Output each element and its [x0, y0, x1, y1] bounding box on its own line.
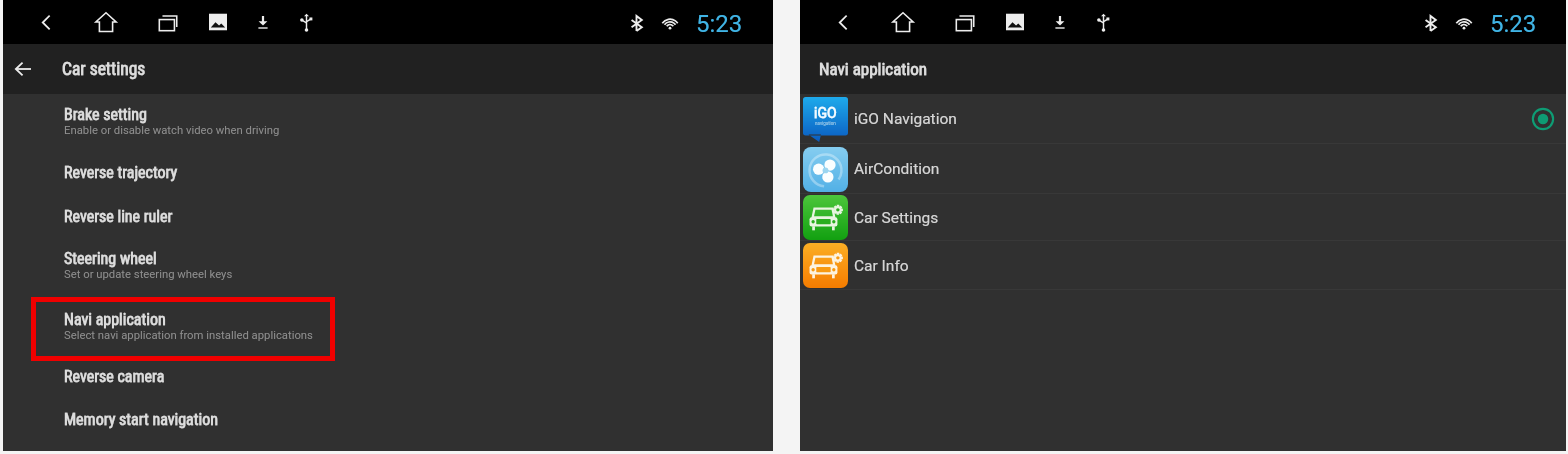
staticText: Reverse camera — [64, 367, 165, 386]
staticText: iGO — [814, 105, 837, 121]
button[interactable]: USB — [296, 12, 317, 33]
staticText: Set or update steering wheel keys — [64, 268, 233, 281]
other: Wi-Fi — [660, 13, 680, 33]
button[interactable]: Home — [95, 11, 117, 33]
staticText: AirCondition — [854, 160, 940, 178]
staticText: Memory start navigation — [64, 410, 218, 429]
staticText: Brake setting — [64, 105, 147, 124]
button[interactable]: Car Info — [800, 241, 1566, 290]
button[interactable]: Car Settings — [800, 194, 1566, 241]
staticText: Reverse trajectory — [64, 163, 178, 182]
button[interactable]: Recents — [954, 12, 975, 33]
button[interactable]: Reverse line ruler — [3, 207, 773, 227]
staticText: Reverse line ruler — [64, 207, 173, 226]
button[interactable]: Download — [253, 12, 273, 32]
button[interactable]: Back — [36, 12, 57, 33]
button[interactable]: Navi application — [3, 310, 773, 346]
other: Wi-Fi — [1454, 13, 1474, 33]
other: Back — [12, 57, 36, 81]
button[interactable]: Download — [1050, 12, 1070, 32]
staticText: 5:23 — [696, 10, 743, 38]
button[interactable]: Memory start navigation — [3, 410, 773, 430]
button[interactable]: Recents — [157, 12, 178, 33]
staticText: Enable or disable watch video when drivi… — [64, 124, 280, 137]
staticText: navigation — [815, 121, 836, 126]
staticText: Car settings — [62, 59, 146, 80]
staticText: iGO Navigation — [854, 110, 957, 128]
staticText: Navi application — [64, 310, 166, 329]
other: Bluetooth — [1421, 14, 1440, 33]
button[interactable]: Selected — [1532, 108, 1554, 130]
button[interactable]: Screenshot — [209, 13, 227, 31]
button[interactable]: iGO — [800, 94, 1566, 144]
staticText: Car Settings — [854, 209, 939, 227]
other: Bluetooth — [627, 14, 646, 33]
button[interactable]: Back — [833, 12, 854, 33]
button[interactable]: AirCondition — [800, 144, 1566, 194]
staticText: Select navi application from installed a… — [64, 329, 313, 342]
button[interactable]: Back — [3, 44, 773, 94]
staticText: 5:23 — [1490, 10, 1537, 38]
staticText: Steering wheel — [64, 249, 157, 268]
button[interactable]: Reverse trajectory — [3, 163, 773, 183]
button[interactable]: Brake setting — [3, 105, 773, 141]
staticText: Navi application — [819, 59, 928, 79]
button[interactable]: Home — [892, 11, 914, 33]
staticText: Car Info — [854, 257, 909, 275]
button[interactable]: Screenshot — [1006, 13, 1024, 31]
button[interactable]: Steering wheel — [3, 249, 773, 285]
button[interactable]: Reverse camera — [3, 367, 773, 387]
button[interactable]: USB — [1093, 12, 1114, 33]
